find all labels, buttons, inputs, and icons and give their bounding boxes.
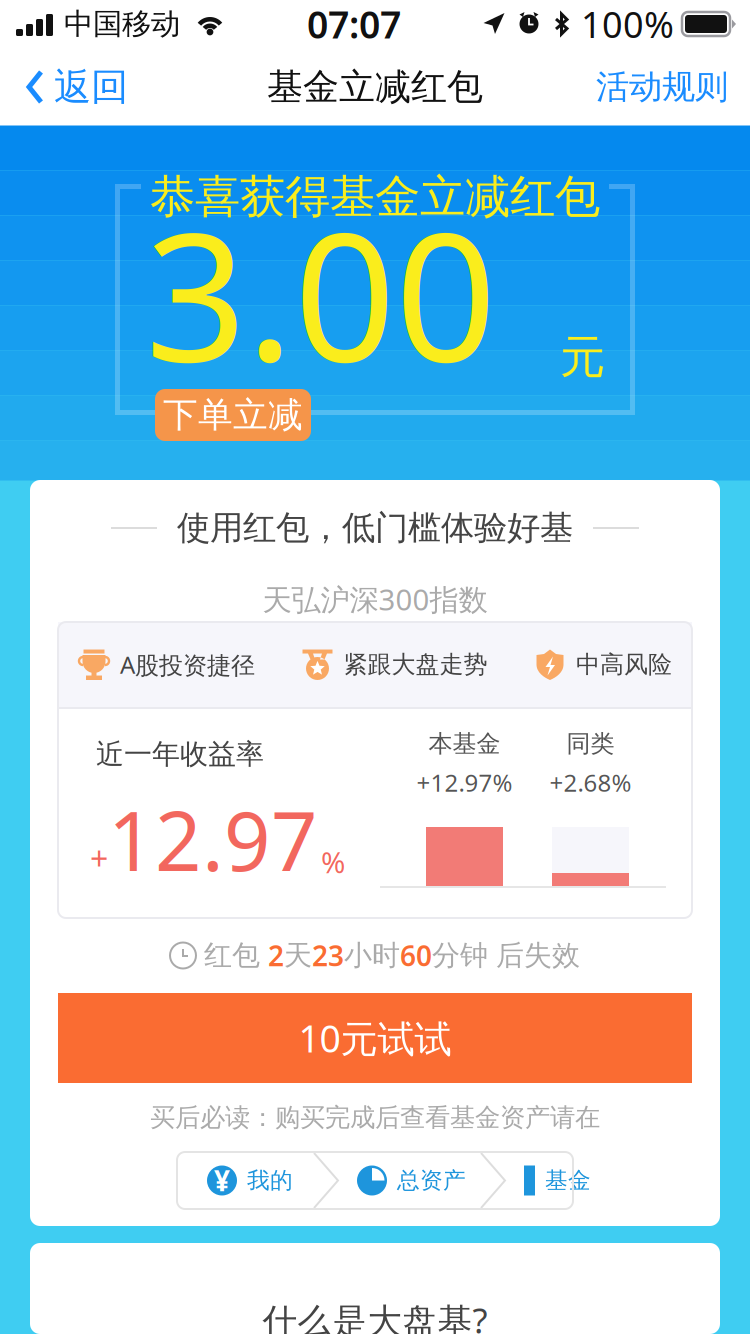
- staticText: 小时: [344, 938, 400, 973]
- button[interactable]: 10元试试: [58, 993, 692, 1083]
- staticText: 2: [268, 937, 284, 974]
- staticText: 3.00: [145, 175, 496, 410]
- staticText: 使用红包，低门槛体验好基: [177, 507, 573, 548]
- staticText: 我的: [247, 1167, 293, 1194]
- staticText: 基金: [545, 1167, 591, 1194]
- staticText: 天: [284, 938, 312, 973]
- staticText: 买后必读：购买完成后查看基金资产请在: [150, 1102, 600, 1133]
- staticText: 近一年收益率: [96, 737, 264, 771]
- button[interactable]: 活动规则: [574, 48, 750, 126]
- staticText: 下单立减: [163, 394, 303, 436]
- staticText: 红包: [196, 938, 268, 973]
- staticText: 什么是大盘基?: [262, 1297, 487, 1334]
- button[interactable]: 返回: [0, 48, 146, 126]
- staticText: ¥: [214, 1162, 230, 1199]
- staticText: 本基金: [428, 729, 500, 758]
- staticText: 活动规则: [596, 66, 728, 107]
- staticText: 中国移动: [64, 6, 180, 42]
- staticText: 天弘沪深300指数: [262, 579, 487, 618]
- staticText: %: [321, 842, 345, 881]
- staticText: 紧跟大盘走势: [343, 650, 487, 679]
- staticText: 12.97: [108, 785, 318, 893]
- button[interactable]: 下单立减: [155, 389, 311, 441]
- staticText: 恭喜获得基金立减红包: [150, 169, 600, 225]
- staticText: 总资产: [397, 1167, 466, 1194]
- staticText: +12.97%: [416, 766, 512, 798]
- staticText: 中高风险: [576, 650, 672, 679]
- staticText: 同类: [566, 729, 614, 758]
- staticText: 分钟 后失效: [432, 938, 580, 973]
- staticText: 23: [312, 937, 344, 974]
- staticText: +: [90, 837, 108, 879]
- staticText: 60: [400, 937, 432, 974]
- staticText: 07:07: [307, 0, 401, 49]
- staticText: 返回: [54, 64, 128, 110]
- staticText: 基金立减红包: [267, 65, 483, 109]
- staticText: 元: [560, 329, 605, 385]
- staticText: +2.68%: [549, 766, 631, 798]
- staticText: 100%: [581, 0, 674, 48]
- staticText: A股投资捷径: [120, 648, 255, 680]
- staticText: 10元试试: [298, 1013, 451, 1063]
